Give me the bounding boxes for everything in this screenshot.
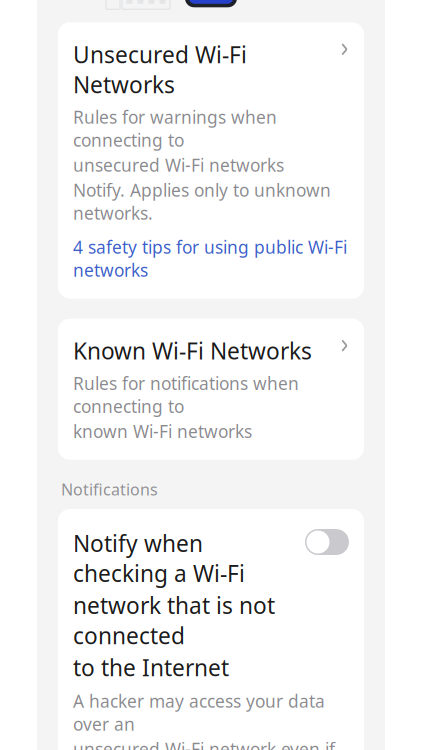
staticText: Unsecured Wi-Fi Networks [73, 39, 247, 99]
staticText: unsecured Wi-Fi network even if there [73, 738, 335, 750]
button[interactable]: Notify when checking a Wi-Fi network tha… [305, 529, 349, 555]
staticText: network that is not connected [73, 590, 275, 650]
staticText: Rules for notifications when connecting … [73, 372, 299, 418]
staticText: A hacker may access your data over an [73, 689, 325, 735]
staticText: unsecured Wi-Fi networks [73, 153, 284, 176]
staticText: Notify when checking a Wi-Fi [73, 528, 245, 588]
staticText: Notifications [61, 479, 158, 500]
staticText: known Wi-Fi networks [73, 420, 252, 443]
staticText: to the Internet [73, 652, 229, 682]
staticText: 4 safety tips for using public Wi-Fi net… [73, 236, 347, 282]
staticText: Rules for warnings when connecting to [73, 105, 277, 151]
staticText: Known Wi-Fi Networks [73, 336, 312, 366]
button[interactable]: Known Wi-Fi Networks [58, 319, 364, 460]
button[interactable]: Unsecured Wi-Fi Networks [58, 22, 364, 299]
staticText: Notify. Applies only to unknown networks… [73, 179, 331, 225]
